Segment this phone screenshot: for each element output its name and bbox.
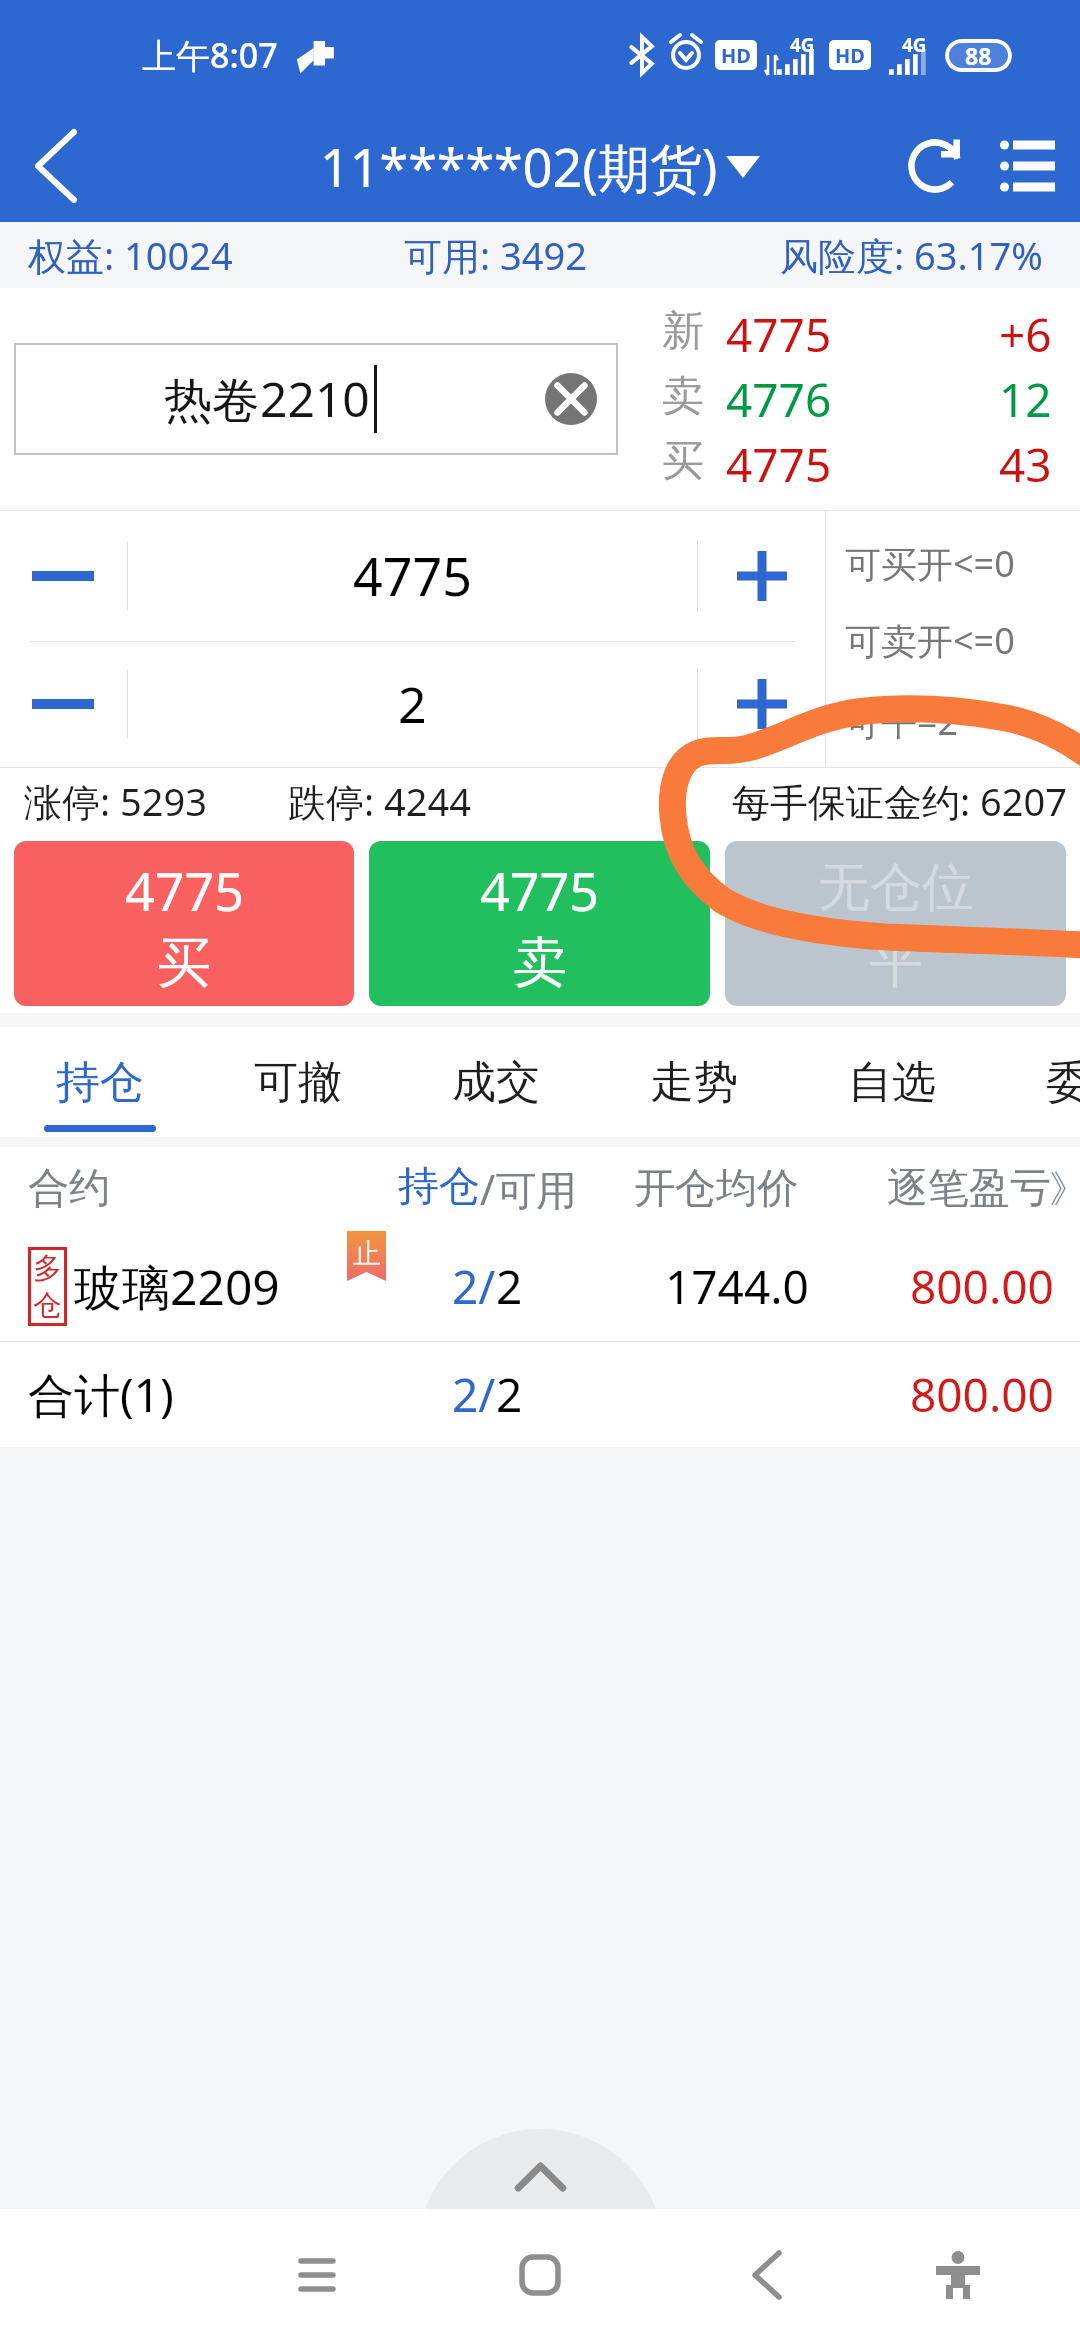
staticText: 风险度: 63.17% (780, 229, 1043, 281)
button[interactable]: More columns (1028, 1147, 1080, 1231)
button[interactable]: Accessibility (868, 2209, 1048, 2340)
staticText: 合计(1) (28, 1363, 174, 1426)
button[interactable]: 4775 (14, 841, 354, 1006)
staticText: 2 (496, 1363, 523, 1426)
button[interactable]: 热卷2210 (14, 343, 618, 455)
button[interactable]: 委托 (991, 1027, 1080, 1137)
staticText: 买 (157, 929, 211, 997)
button[interactable]: 走势 (595, 1027, 793, 1137)
staticText: 上午8:07 (142, 32, 278, 78)
button[interactable]: 成交 (397, 1027, 595, 1137)
button[interactable]: Back (677, 2209, 857, 2340)
staticText: 4775 (353, 540, 472, 611)
button[interactable]: Decrease (0, 642, 126, 766)
staticText: 4775 (726, 433, 832, 496)
button[interactable]: 多 (0, 1231, 1080, 1342)
button[interactable]: 持仓 (1, 1027, 199, 1137)
staticText: 1744.0 (665, 1255, 809, 1318)
staticText: 可撤 (254, 1055, 342, 1110)
button[interactable]: 11*****02(期货) (320, 131, 760, 202)
staticText: 可平=2 (845, 697, 959, 746)
staticText: /可用 (480, 1161, 578, 1217)
staticText: 止 (353, 1236, 381, 1271)
staticText: 逐笔盈亏 (887, 1163, 1051, 1215)
button[interactable]: Expand (417, 2129, 664, 2209)
staticText: 持仓 (56, 1055, 144, 1110)
button[interactable]: 无仓位 (725, 841, 1066, 1006)
staticText: 卖 (513, 929, 567, 997)
button[interactable]: Clear (519, 347, 623, 451)
staticText: 4G (902, 32, 927, 58)
button[interactable]: Menu (975, 110, 1080, 222)
staticText: 4G (790, 32, 815, 58)
staticText: 4775 (480, 855, 599, 926)
button[interactable]: Increase (699, 510, 825, 641)
staticText: 委托 (1046, 1055, 1080, 1110)
staticText: 持仓 (398, 1161, 480, 1213)
staticText: 涨停: 5293 (24, 775, 208, 827)
staticText: 2 (496, 1255, 523, 1318)
staticText: 2/ (452, 1363, 496, 1426)
button[interactable]: Back (0, 110, 112, 222)
staticText: 走势 (650, 1055, 738, 1110)
staticText: 多 (33, 1250, 62, 1287)
staticText: 仓 (33, 1287, 62, 1324)
staticText: 可用: 3492 (404, 229, 588, 281)
staticText: 开仓均价 (634, 1163, 798, 1215)
staticText: 热卷2210 (164, 366, 370, 432)
staticText: 》 (1049, 1165, 1080, 1213)
staticText: 新 (662, 305, 704, 358)
staticText: 可卖开<=0 (845, 616, 1015, 665)
staticText: 无仓位 (818, 855, 974, 921)
staticText: 跌停: 4244 (288, 775, 472, 827)
staticText: 11*****02(期货) (320, 131, 718, 202)
staticText: 平 (869, 929, 923, 997)
button[interactable]: Increase (699, 642, 825, 766)
staticText: 43 (999, 433, 1052, 496)
staticText: 800.00 (910, 1363, 1054, 1426)
button[interactable]: Home (450, 2209, 630, 2340)
button[interactable]: Decrease (0, 510, 126, 641)
staticText: 玻璃2209 (74, 1254, 280, 1320)
staticText: 12 (999, 368, 1052, 431)
staticText: HD (835, 42, 865, 69)
staticText: 买 (662, 435, 704, 488)
staticText: +6 (999, 303, 1052, 366)
staticText: 4775 (125, 855, 244, 926)
staticText: 每手保证金约: 6207 (732, 775, 1068, 827)
staticText: 800.00 (910, 1255, 1054, 1318)
staticText: 自选 (848, 1055, 936, 1110)
staticText: 合约 (28, 1163, 110, 1215)
button[interactable]: 自选 (793, 1027, 991, 1137)
staticText: HD (721, 42, 751, 69)
staticText: 2 (398, 670, 427, 738)
staticText: 4775 (726, 303, 832, 366)
staticText: 2/ (452, 1255, 496, 1318)
button[interactable]: 合计(1) (0, 1342, 1080, 1447)
button[interactable]: 可撤 (199, 1027, 397, 1137)
button[interactable]: Recents (227, 2209, 407, 2340)
staticText: 4776 (726, 368, 832, 431)
staticText: 权益: 10024 (28, 229, 233, 281)
staticText: 88 (965, 40, 992, 71)
staticText: 成交 (452, 1055, 540, 1110)
button[interactable]: 4775 (369, 841, 710, 1006)
staticText: 卖 (662, 370, 704, 423)
button[interactable]: Refresh (880, 110, 990, 222)
staticText: 可买开<=0 (845, 539, 1015, 588)
